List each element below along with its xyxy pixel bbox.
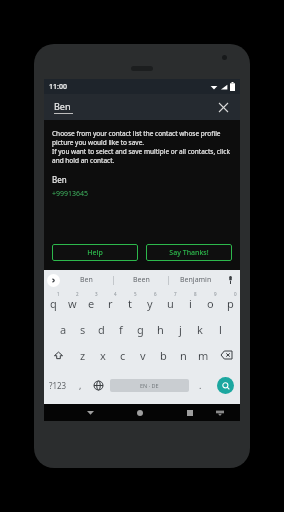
staticText: b [160, 348, 167, 363]
staticText: Benjamin [180, 275, 212, 285]
button[interactable]: Been [114, 270, 168, 290]
button[interactable]: f [111, 316, 130, 342]
staticText: 5 [134, 291, 137, 297]
staticText: Ben [52, 174, 67, 185]
button[interactable]: v [133, 342, 153, 368]
button[interactable]: d [92, 316, 111, 342]
button[interactable]: l [210, 316, 230, 342]
staticText: l [219, 322, 222, 337]
staticText: f [119, 322, 123, 337]
button[interactable]: i [180, 290, 200, 316]
staticText: 3 [95, 291, 98, 297]
staticText: 7 [174, 291, 177, 297]
staticText: Choose from your contact list the contac… [52, 129, 232, 147]
staticText: a [60, 322, 67, 337]
staticText: EN · DE [140, 382, 159, 389]
button[interactable]: c [113, 342, 133, 368]
staticText: t [128, 296, 132, 311]
button[interactable]: Voice input [223, 270, 237, 290]
button[interactable]: k [190, 316, 210, 342]
button[interactable]: u [160, 290, 180, 316]
button[interactable]: Keyboard settings [207, 404, 232, 421]
button[interactable]: x [93, 342, 113, 368]
button[interactable]: h [150, 316, 170, 342]
staticText: Ben [80, 275, 93, 285]
button[interactable]: q [44, 290, 63, 316]
staticText: 0 [234, 291, 237, 297]
button[interactable]: m [193, 342, 213, 368]
staticText: j [179, 322, 182, 337]
button[interactable]: p [220, 290, 240, 316]
button[interactable]: ?123 [44, 368, 72, 402]
staticText: 4 [114, 291, 117, 297]
button[interactable]: g [130, 316, 150, 342]
staticText: q [50, 296, 57, 311]
button[interactable]: b [153, 342, 173, 368]
staticText: 6 [154, 291, 157, 297]
button[interactable]: Ben [54, 100, 73, 114]
staticText: h [157, 322, 164, 337]
staticText: p [227, 296, 234, 311]
button[interactable]: y [140, 290, 160, 316]
button[interactable]: Back [76, 404, 104, 421]
button[interactable]: Search [217, 377, 234, 394]
staticText: 2 [76, 291, 79, 297]
staticText: +99913645 [52, 189, 89, 199]
button[interactable]: Recent apps [176, 404, 204, 421]
button[interactable]: Say Thanks! [146, 244, 232, 261]
button[interactable]: Home [126, 404, 154, 421]
staticText: If you want to select and save multiple … [52, 147, 232, 165]
staticText: x [100, 348, 106, 363]
staticText: g [137, 322, 144, 337]
button[interactable]: EN · DE [110, 379, 189, 392]
button[interactable]: Help [52, 244, 138, 261]
staticText: s [80, 322, 86, 337]
button[interactable]: r [101, 290, 120, 316]
button[interactable]: Backspace [213, 342, 240, 368]
staticText: 11:00 [49, 82, 67, 92]
staticText: 1 [57, 291, 60, 297]
staticText: , [79, 379, 82, 391]
staticText: e [88, 296, 95, 311]
staticText: u [167, 296, 174, 311]
staticText: v [140, 348, 146, 363]
staticText: k [197, 322, 203, 337]
staticText: Been [133, 275, 150, 285]
button[interactable]: j [170, 316, 190, 342]
button[interactable]: More suggestions [47, 274, 60, 287]
button[interactable]: e [82, 290, 101, 316]
staticText: i [189, 296, 192, 311]
staticText: n [180, 348, 187, 363]
button[interactable]: s [73, 316, 92, 342]
button[interactable]: Emoji [72, 368, 89, 402]
staticText: ?123 [49, 380, 67, 391]
staticText: r [108, 296, 113, 311]
staticText: . [199, 379, 202, 391]
staticText: y [147, 296, 153, 311]
staticText: Say Thanks! [169, 248, 209, 258]
staticText: z [80, 348, 86, 363]
button[interactable]: a [54, 316, 73, 342]
button[interactable]: Ben [52, 174, 232, 199]
button[interactable]: o [200, 290, 220, 316]
button[interactable]: Change language [89, 368, 108, 402]
staticText: Help [87, 248, 103, 258]
staticText: c [120, 348, 126, 363]
button[interactable]: Benjamin [169, 270, 223, 290]
button[interactable]: z [72, 342, 93, 368]
staticText: m [198, 348, 209, 363]
staticText: 8 [194, 291, 197, 297]
button[interactable]: Shift [44, 342, 72, 368]
button[interactable]: . [191, 368, 210, 402]
button[interactable]: Ben [60, 270, 113, 290]
staticText: d [98, 322, 105, 337]
button[interactable]: w [63, 290, 82, 316]
staticText: 9 [214, 291, 217, 297]
button[interactable]: n [173, 342, 193, 368]
staticText: Ben [54, 100, 71, 112]
staticText: o [207, 296, 214, 311]
button[interactable]: Clear search [214, 98, 232, 116]
button[interactable]: t [120, 290, 140, 316]
staticText: w [68, 296, 77, 311]
